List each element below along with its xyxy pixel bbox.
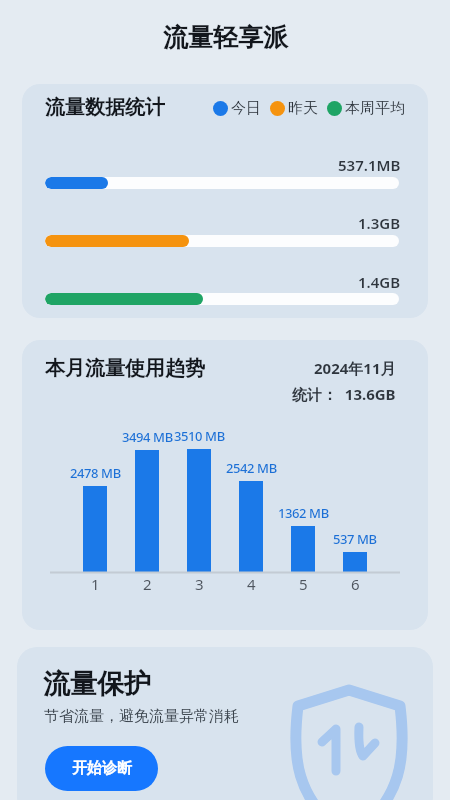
staticText: 流量数据统计: [45, 95, 165, 120]
staticText: 统计： 13.6GB: [292, 384, 396, 404]
staticText: 1: [91, 574, 100, 594]
staticText: 2478 MB: [70, 464, 121, 482]
staticText: 3494 MB: [122, 428, 173, 446]
staticText: 本月流量使用趋势: [45, 356, 205, 381]
staticText: 2: [143, 574, 152, 594]
staticText: 6: [351, 574, 360, 594]
staticText: 2024年11月: [314, 358, 396, 378]
staticText: 流量轻享派: [163, 22, 288, 53]
staticText: 昨天: [288, 99, 318, 118]
staticText: 今日: [231, 99, 261, 118]
button[interactable]: 开始诊断: [45, 746, 158, 791]
staticText: 1362 MB: [278, 504, 329, 522]
staticText: 流量保护: [43, 667, 151, 701]
staticText: 2542 MB: [226, 459, 277, 477]
staticText: 537.1MB: [338, 155, 401, 175]
staticText: 节省流量，避免流量异常消耗: [44, 707, 239, 726]
staticText: 3510 MB: [174, 427, 225, 445]
staticText: 5: [299, 574, 308, 594]
staticText: 本周平均: [345, 99, 405, 118]
staticText: 4: [247, 574, 256, 594]
staticText: 3: [195, 574, 204, 594]
staticText: 1.3GB: [358, 213, 401, 233]
staticText: 开始诊断: [72, 759, 132, 778]
staticText: 537 MB: [333, 530, 377, 548]
staticText: 1.4GB: [358, 272, 401, 292]
